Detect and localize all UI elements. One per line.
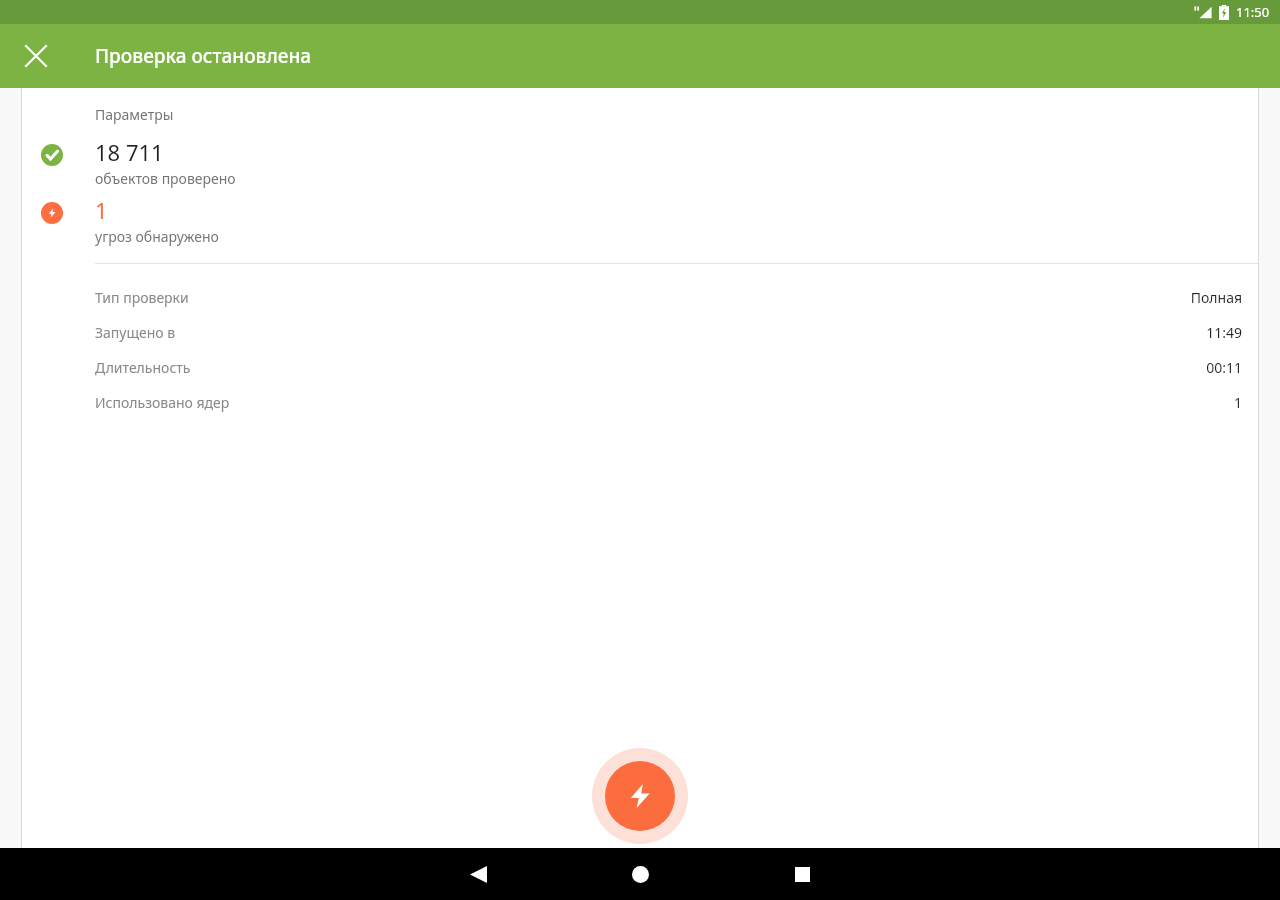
staticText: 1 <box>95 195 108 225</box>
staticText: Использовано ядер <box>95 393 230 412</box>
button[interactable]: Закрыть <box>12 32 60 80</box>
staticText: Параметры <box>95 105 174 124</box>
staticText: 00:11 <box>1206 358 1242 377</box>
button[interactable]: Назад <box>454 850 502 898</box>
button[interactable]: Домой <box>616 850 664 898</box>
button[interactable]: Длительность <box>22 350 1258 385</box>
button[interactable]: Обзор <box>778 850 826 898</box>
staticText: Проверка остановлена <box>95 43 312 69</box>
staticText: Запущено в <box>95 323 176 342</box>
staticText: Тип проверки <box>95 288 189 307</box>
staticText: угроз обнаружено <box>95 227 219 246</box>
button[interactable]: Запустить проверку <box>592 748 688 844</box>
button[interactable]: Использовано ядер <box>22 385 1258 420</box>
staticText: 11:49 <box>1206 323 1242 342</box>
staticText: 1 <box>1233 393 1242 412</box>
staticText: объектов проверено <box>95 169 236 188</box>
staticText: 18 711 <box>95 137 164 167</box>
staticText: 11:50 <box>1236 3 1270 21</box>
staticText: Полная <box>1190 288 1242 307</box>
staticText: Длительность <box>95 358 191 377</box>
button[interactable]: Запущено в <box>22 315 1258 350</box>
button[interactable]: Тип проверки <box>22 280 1258 315</box>
